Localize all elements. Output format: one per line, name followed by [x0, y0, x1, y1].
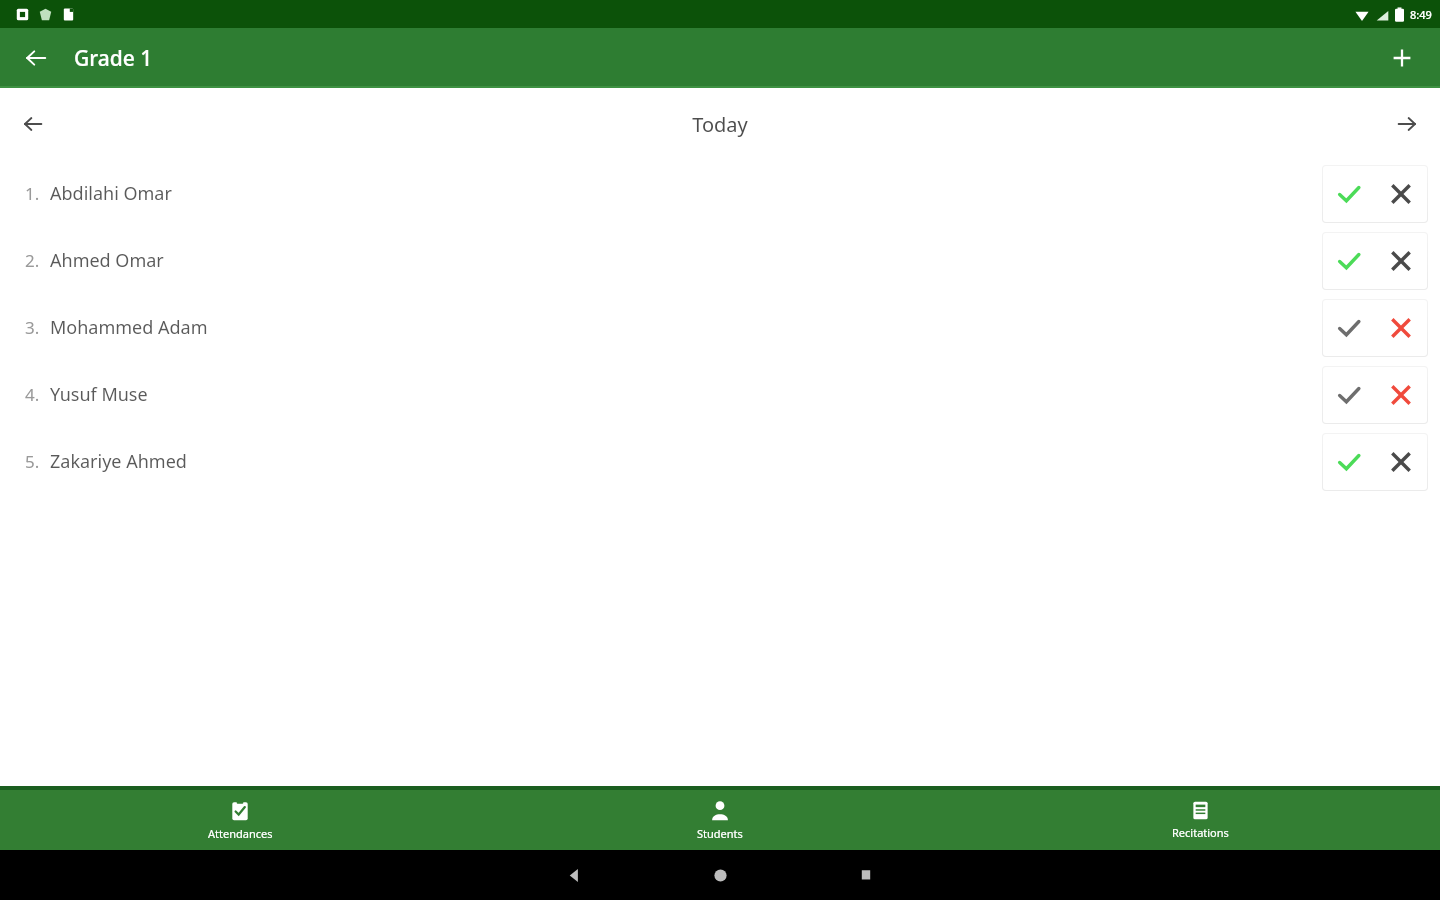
- button[interactable]: Recitations: [960, 790, 1440, 850]
- button[interactable]: Mark absent: [1375, 300, 1427, 356]
- button[interactable]: Mark present: [1323, 300, 1375, 356]
- button[interactable]: Mark absent: [1375, 434, 1427, 490]
- staticText: Zakariye Ahmed: [50, 449, 187, 474]
- button[interactable]: Add: [1378, 34, 1426, 82]
- button[interactable]: Mark present: [1323, 434, 1375, 490]
- staticText: 8:49: [1410, 7, 1432, 22]
- button[interactable]: Mark present: [1323, 233, 1375, 289]
- staticText: 3.: [25, 316, 40, 339]
- button[interactable]: Students: [480, 790, 960, 850]
- staticText: 4.: [25, 383, 40, 406]
- staticText: Attendances: [208, 826, 273, 841]
- staticText: Ahmed Omar: [50, 248, 164, 273]
- button[interactable]: Recent apps: [793, 855, 939, 895]
- button[interactable]: Back: [12, 34, 60, 82]
- button[interactable]: Next day: [1384, 101, 1430, 147]
- button[interactable]: Previous day: [10, 101, 56, 147]
- staticText: Recitations: [1172, 825, 1229, 840]
- button[interactable]: Mark absent: [1375, 233, 1427, 289]
- button[interactable]: Mark absent: [1375, 367, 1427, 423]
- staticText: Today: [692, 111, 748, 138]
- staticText: 1.: [25, 182, 40, 205]
- button[interactable]: Home: [647, 855, 793, 895]
- staticText: 2.: [25, 249, 40, 272]
- button[interactable]: Back: [501, 855, 647, 895]
- button[interactable]: Mark present: [1323, 367, 1375, 423]
- staticText: Yusuf Muse: [50, 382, 148, 407]
- staticText: Students: [697, 826, 743, 841]
- staticText: 5.: [25, 450, 40, 473]
- button[interactable]: Mark present: [1323, 166, 1375, 222]
- staticText: Abdilahi Omar: [50, 181, 172, 206]
- button[interactable]: Attendances: [0, 790, 480, 850]
- staticText: Grade 1: [74, 44, 153, 73]
- staticText: Mohammed Adam: [50, 315, 208, 340]
- button[interactable]: Mark absent: [1375, 166, 1427, 222]
